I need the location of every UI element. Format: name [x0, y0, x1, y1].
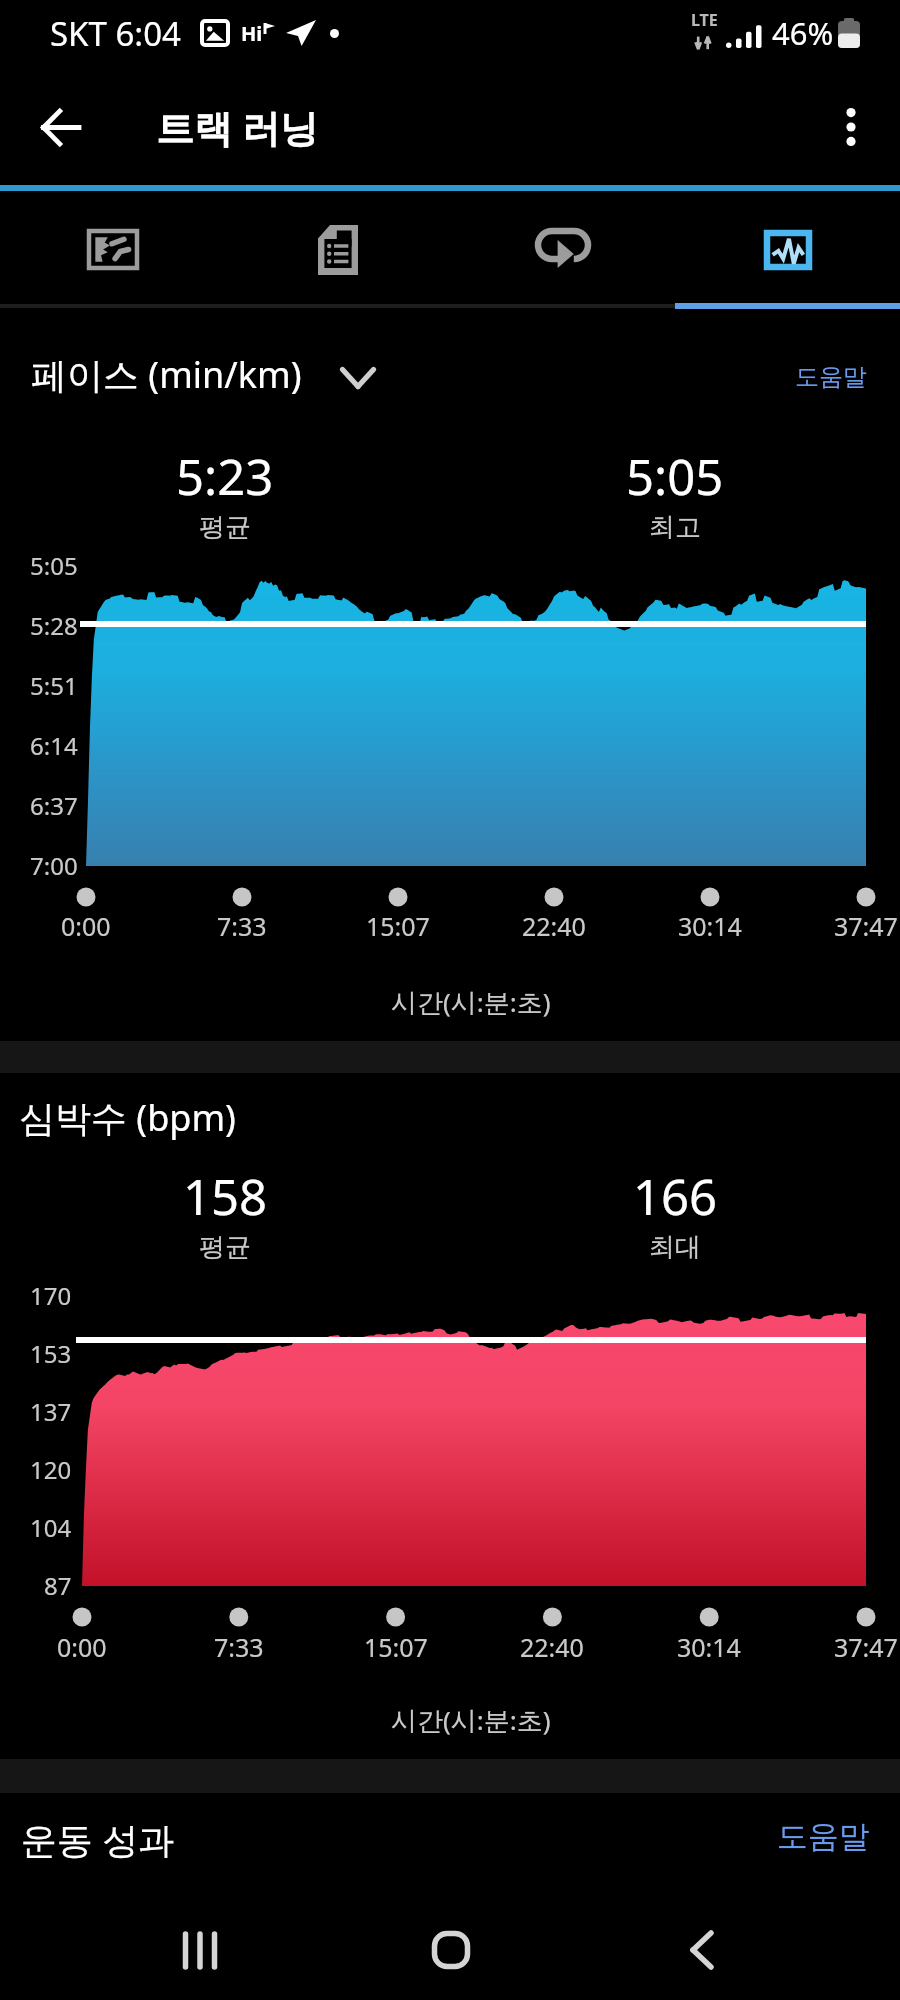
button[interactable]: Details — [225, 191, 450, 308]
staticText: 30:14 — [677, 1630, 741, 1664]
staticText: 104 — [30, 1511, 72, 1544]
staticText: 평균 — [199, 511, 251, 544]
button[interactable]: Back — [10, 66, 110, 188]
button[interactable]: Home — [396, 1900, 506, 2000]
staticText: 최대 — [649, 1231, 701, 1264]
staticText: 페이스 (min/km) — [31, 350, 302, 399]
button[interactable]: More options — [802, 66, 900, 188]
staticText: 6:37 — [30, 789, 78, 822]
staticText: 7:33 — [214, 1630, 264, 1664]
staticText: 운동 성과 — [21, 1815, 175, 1864]
staticText: 37:47 — [834, 909, 898, 943]
button[interactable]: Charts — [675, 191, 900, 308]
staticText: 최고 — [649, 511, 701, 544]
button[interactable]: Laps — [450, 191, 675, 308]
staticText: 5:28 — [30, 609, 78, 642]
staticText: 22:40 — [520, 1630, 584, 1664]
button[interactable]: Route map — [0, 191, 225, 308]
button[interactable]: Back — [647, 1900, 757, 2000]
staticText: 166 — [633, 1163, 718, 1230]
staticText: Hi — [241, 20, 263, 47]
staticText: 7:00 — [30, 849, 78, 882]
staticText: 46% — [772, 12, 834, 54]
staticText: 시간(시:분:초) — [391, 1702, 551, 1738]
staticText: 5:05 — [626, 443, 724, 510]
staticText: 평균 — [199, 1231, 251, 1264]
staticText: 15:07 — [364, 1630, 428, 1664]
staticText: 153 — [30, 1337, 72, 1370]
staticText: 0:00 — [57, 1630, 107, 1664]
staticText: 120 — [30, 1453, 72, 1486]
staticText: 시간(시:분:초) — [391, 984, 551, 1020]
staticText: 도움말 — [777, 1817, 870, 1856]
staticText: 87 — [44, 1569, 72, 1602]
staticText: 22:40 — [522, 909, 586, 943]
staticText: 30:14 — [678, 909, 742, 943]
button[interactable]: Change metric — [328, 355, 388, 400]
staticText: 5:51 — [30, 669, 78, 702]
staticText: 170 — [30, 1279, 72, 1312]
staticText: 137 — [30, 1395, 72, 1428]
staticText: 158 — [183, 1163, 268, 1230]
staticText: 15:07 — [366, 909, 430, 943]
button[interactable]: 운동 성과 — [0, 1787, 900, 1897]
staticText: 5:23 — [176, 443, 274, 510]
staticText: 6:14 — [30, 729, 78, 762]
staticText: 7:33 — [217, 909, 267, 943]
staticText: LTE — [691, 9, 718, 31]
button[interactable]: 도움말 — [760, 356, 867, 398]
staticText: 5:05 — [30, 549, 78, 582]
staticText: 도움말 — [795, 362, 867, 392]
staticText: 심박수 (bpm) — [19, 1093, 236, 1142]
staticText: 트랙 러닝 — [156, 101, 318, 153]
button[interactable]: Recent apps — [145, 1900, 255, 2000]
staticText: 37:47 — [834, 1630, 898, 1664]
staticText: SKT 6:04 — [50, 11, 181, 56]
staticText: 0:00 — [61, 909, 111, 943]
